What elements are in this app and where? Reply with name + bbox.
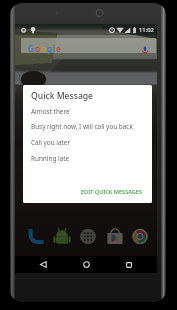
button[interactable]: Busy right now, I will call you back [23,118,152,134]
button[interactable]: EDIT QUICK MESSAGES [78,185,146,199]
staticText: l [53,43,56,54]
staticText: 11:02 [139,26,154,34]
staticText: Almost there [31,107,70,116]
button[interactable]: Back [28,256,58,273]
button[interactable]: Almost there [23,103,152,119]
button[interactable]: Home [71,256,101,273]
button[interactable]: Call you later [23,134,152,150]
staticText: Busy right now, I will call you back [31,122,133,131]
staticText: e [56,43,61,54]
other: Voice search [141,46,149,54]
staticText: G [28,43,35,54]
staticText: g [47,43,53,54]
staticText: Call you later [31,138,71,147]
button[interactable]: G [21,38,156,53]
button[interactable]: Running late [23,150,152,166]
button[interactable]: Recent apps [114,256,144,273]
staticText: o [35,43,41,54]
staticText: Quick Message [31,90,94,102]
staticText: EDIT QUICK MESSAGES [81,188,143,196]
staticText: o [41,43,47,54]
staticText: Running late [31,154,70,163]
